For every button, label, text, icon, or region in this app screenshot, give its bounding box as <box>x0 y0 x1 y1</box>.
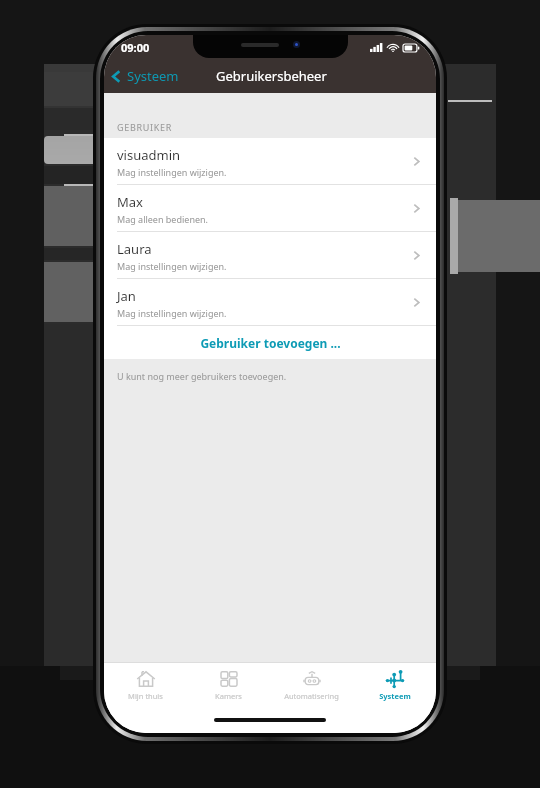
staticText: Kamers <box>215 691 242 701</box>
staticText: Mag instellingen wijzigen. <box>117 260 227 272</box>
button[interactable]: visuadmin <box>104 138 436 185</box>
staticText: GEBRUIKER <box>117 121 173 133</box>
staticText: visuadmin <box>117 146 181 164</box>
button[interactable]: Gebruiker toevoegen ... <box>104 326 436 359</box>
button[interactable]: Systeem <box>104 63 187 89</box>
button[interactable]: Mijn thuis <box>104 665 187 705</box>
button[interactable]: Laura <box>104 232 436 279</box>
staticText: Mag instellingen wijzigen. <box>117 166 227 178</box>
button[interactable]: Kamers <box>187 665 270 705</box>
staticText: Systeem <box>127 67 179 85</box>
staticText: Automatisering <box>284 691 339 701</box>
button[interactable]: Max <box>104 185 436 232</box>
staticText: Max <box>117 193 143 211</box>
staticText: U kunt nog meer gebruikers toevoegen. <box>117 370 287 382</box>
button[interactable]: Systeem <box>353 665 436 705</box>
button[interactable]: Jan <box>104 279 436 326</box>
button[interactable]: Automatisering <box>270 665 353 705</box>
staticText: Systeem <box>379 691 411 701</box>
staticText: Gebruikersbeheer <box>216 67 327 85</box>
staticText: Mijn thuis <box>128 691 163 701</box>
staticText: Gebruiker toevoegen ... <box>200 335 341 351</box>
staticText: Jan <box>117 287 136 305</box>
staticText: 09:00 <box>121 40 150 55</box>
staticText: Mag instellingen wijzigen. <box>117 307 227 319</box>
staticText: Mag alleen bedienen. <box>117 213 208 225</box>
staticText: Laura <box>117 240 152 258</box>
